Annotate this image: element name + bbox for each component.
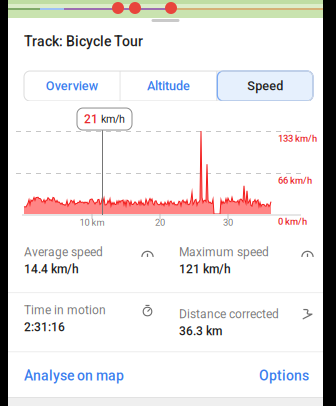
staticText: 36.3 km bbox=[179, 324, 222, 338]
staticText: Analyse on map bbox=[24, 368, 124, 384]
staticText: 0 km/h bbox=[278, 216, 307, 227]
staticText: km/h bbox=[101, 113, 125, 125]
staticText: Track: Bicycle Tour bbox=[24, 33, 143, 50]
staticText: Altitude bbox=[147, 79, 190, 93]
staticText: Speed bbox=[247, 79, 283, 93]
staticText: 20 bbox=[155, 217, 165, 228]
button[interactable]: Analyse on map bbox=[8, 355, 124, 397]
staticText: 66 km/h bbox=[278, 175, 312, 186]
staticText: 121 km/h bbox=[179, 262, 231, 276]
staticText: Maximum speed bbox=[179, 245, 269, 259]
button[interactable]: Altitude bbox=[121, 71, 216, 101]
staticText: Time in motion bbox=[24, 303, 106, 317]
staticText: 14.4 km/h bbox=[24, 262, 79, 276]
staticText: Overview bbox=[46, 79, 98, 93]
staticText: 10 km bbox=[79, 217, 104, 228]
staticText: 30 bbox=[223, 217, 233, 228]
staticText: 2:31:16 bbox=[24, 320, 65, 334]
button[interactable]: Overview bbox=[24, 71, 120, 101]
button[interactable]: Options bbox=[259, 355, 323, 397]
staticText: Distance corrected bbox=[179, 307, 279, 321]
staticText: 21 bbox=[84, 112, 98, 126]
staticText: Options bbox=[259, 368, 309, 384]
staticText: 133 km/h bbox=[278, 133, 317, 144]
button[interactable]: Speed bbox=[217, 71, 313, 101]
staticText: Average speed bbox=[24, 245, 103, 259]
